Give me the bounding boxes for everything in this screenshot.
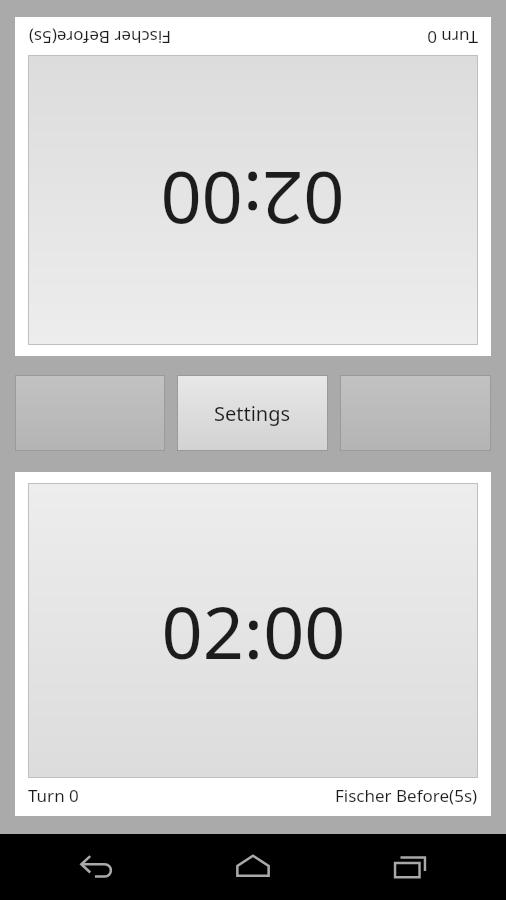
button[interactable]: Pause	[340, 375, 491, 451]
button[interactable]: Home	[193, 834, 313, 900]
button[interactable]: Recent apps	[350, 834, 470, 900]
staticText: Turn 0	[28, 784, 79, 807]
staticText: Settings	[214, 400, 291, 427]
button[interactable]: Back	[37, 834, 157, 900]
staticText: Fischer Before(5s)	[335, 784, 478, 807]
button[interactable]: Settings	[177, 375, 328, 451]
button[interactable]: 02:00	[15, 17, 491, 356]
button[interactable]: 02:00	[15, 472, 491, 816]
staticText: 02:00	[160, 151, 345, 249]
staticText: Fischer Before(5s)	[28, 26, 171, 49]
staticText: Turn 0	[427, 26, 478, 49]
staticText: 02:00	[161, 582, 346, 680]
button[interactable]: Reset	[15, 375, 165, 451]
